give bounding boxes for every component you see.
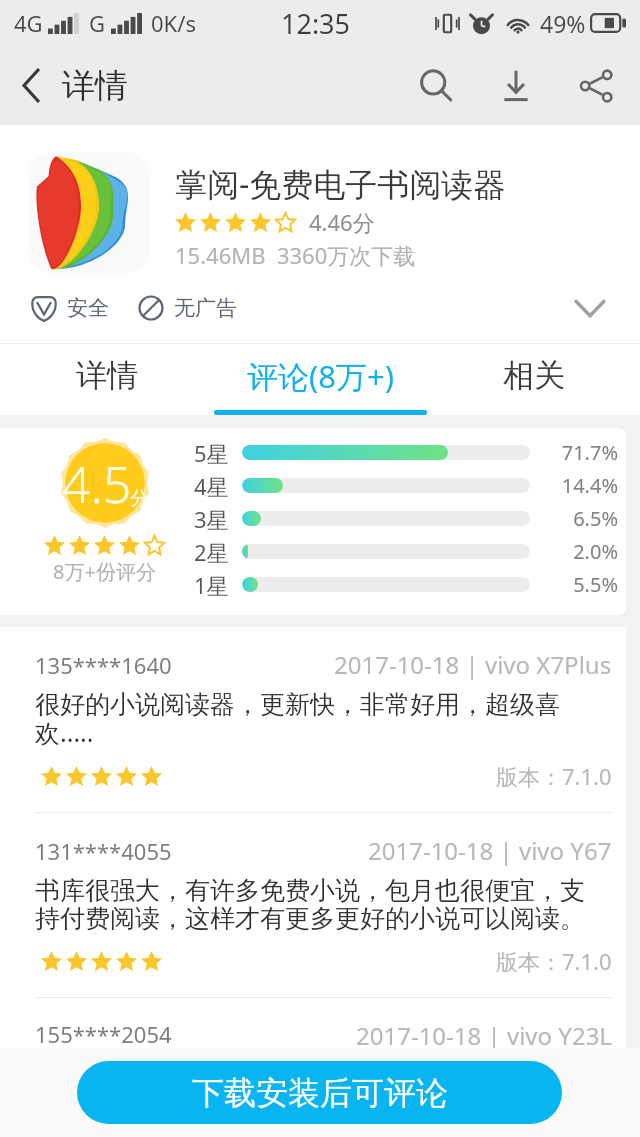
staticText: 相关 xyxy=(503,356,565,395)
staticText: 详情 xyxy=(76,356,138,395)
button[interactable]: Share xyxy=(556,46,636,125)
staticText: 5.5% xyxy=(546,571,618,598)
staticText: 8万+份评分 xyxy=(53,558,156,585)
staticText: 2017-10-18 | vivo Y67 xyxy=(368,834,612,867)
staticText: 2星 xyxy=(194,537,229,567)
staticText: 无广告 xyxy=(174,295,237,321)
staticText: 安全 xyxy=(67,295,109,321)
staticText: 6.5% xyxy=(546,505,618,532)
staticText: G xyxy=(89,8,106,38)
staticText: 下载安装后可评论 xyxy=(192,1073,448,1113)
staticText: 4G xyxy=(14,8,43,38)
staticText: 0K/s xyxy=(151,8,196,38)
button[interactable]: 相关 xyxy=(427,344,640,415)
staticText: 49% xyxy=(540,8,586,39)
staticText: 1星 xyxy=(194,570,229,600)
staticText: 14.4% xyxy=(546,472,618,499)
button[interactable]: 详情 xyxy=(0,344,214,415)
button[interactable]: 131****4055 xyxy=(0,813,626,998)
button[interactable]: Back xyxy=(0,46,62,125)
staticText: 4.46分 xyxy=(309,207,375,237)
staticText: 2017-10-18 | vivo X7Plus xyxy=(334,648,612,681)
staticText: 3星 xyxy=(194,504,229,534)
staticText: 版本：7.1.0 xyxy=(496,761,612,791)
button[interactable]: Search xyxy=(396,46,476,125)
staticText: 版本：7.1.0 xyxy=(496,946,612,976)
staticText: 4星 xyxy=(194,471,229,501)
staticText: 掌阅-免费电子书阅读器 xyxy=(175,162,506,206)
button[interactable]: 下载安装后可评论 xyxy=(77,1061,562,1124)
staticText: 书库很强大，有许多免费小说，包月也很便宜，支持付费阅读，这样才有更多更好的小说可… xyxy=(35,875,591,934)
staticText: 135****1640 xyxy=(35,650,172,680)
staticText: 2.0% xyxy=(546,538,618,565)
staticText: 4.5 xyxy=(62,450,132,518)
button[interactable]: 135****1640 xyxy=(0,627,626,813)
staticText: 12:35 xyxy=(281,5,351,42)
staticText: 分 xyxy=(130,487,149,511)
staticText: 155****2054 xyxy=(35,1019,172,1048)
staticText: 2017-10-18 | vivo Y23L xyxy=(356,1019,612,1048)
button[interactable]: Expand details xyxy=(562,280,618,336)
staticText: 15.46MB 3360万次下载 xyxy=(175,240,416,270)
staticText: 详情 xyxy=(62,65,128,107)
button[interactable]: Download xyxy=(476,46,556,125)
staticText: 71.7% xyxy=(546,439,618,466)
staticText: 5星 xyxy=(194,438,229,468)
staticText: 评论(8万+) xyxy=(247,355,395,397)
button[interactable]: 155****2054 xyxy=(0,998,626,1048)
staticText: 很好的小说阅读器，更新快，非常好用，超级喜欢..... xyxy=(35,689,591,749)
staticText: 131****4055 xyxy=(35,836,172,866)
button[interactable]: 评论(8万+) xyxy=(214,344,427,415)
